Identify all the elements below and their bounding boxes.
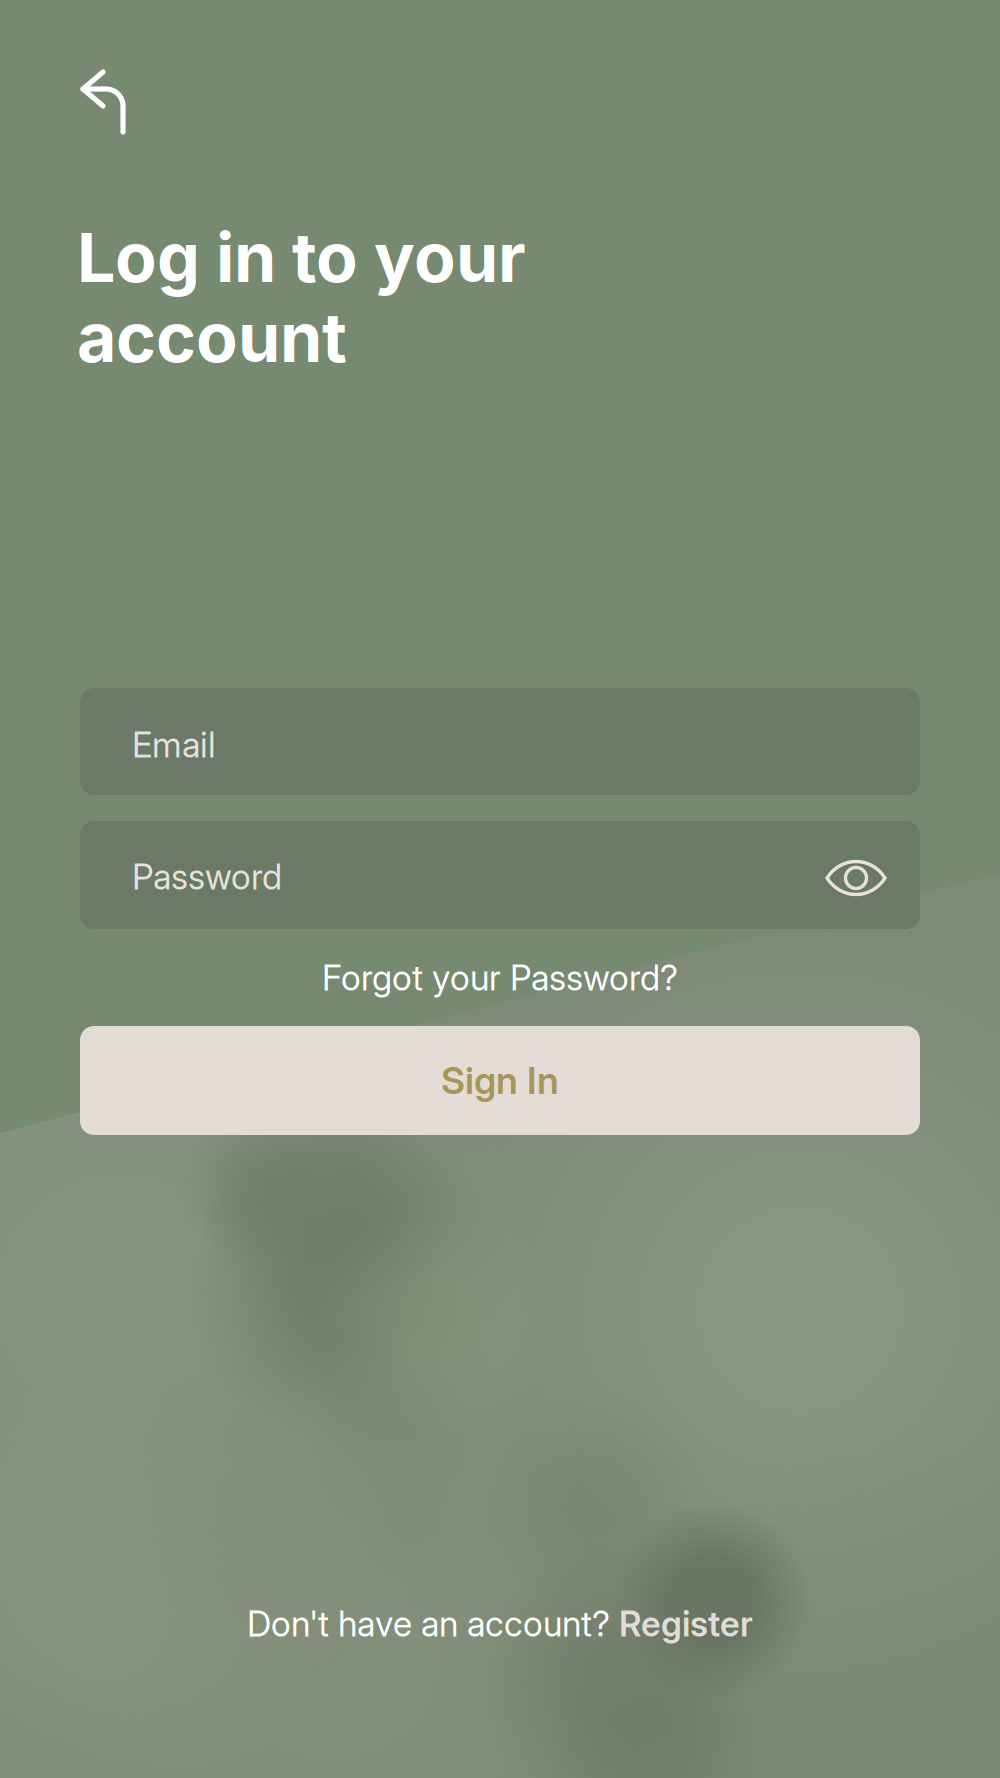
staticText: Register xyxy=(619,1603,753,1645)
staticText: Sign In xyxy=(441,1058,559,1103)
staticText: Don't have an account? xyxy=(247,1603,619,1645)
button[interactable]: Back xyxy=(58,47,158,161)
button[interactable]: Sign In xyxy=(80,1026,920,1135)
button[interactable]: Show password xyxy=(811,845,901,911)
staticText: Forgot your Password? xyxy=(322,957,678,999)
staticText: Email xyxy=(132,724,216,766)
button[interactable]: Forgot your Password? xyxy=(240,946,760,1010)
button[interactable]: Register xyxy=(619,1603,753,1645)
staticText: account xyxy=(77,296,347,378)
staticText: Log in to your xyxy=(77,216,526,298)
staticText: Password xyxy=(132,856,282,898)
